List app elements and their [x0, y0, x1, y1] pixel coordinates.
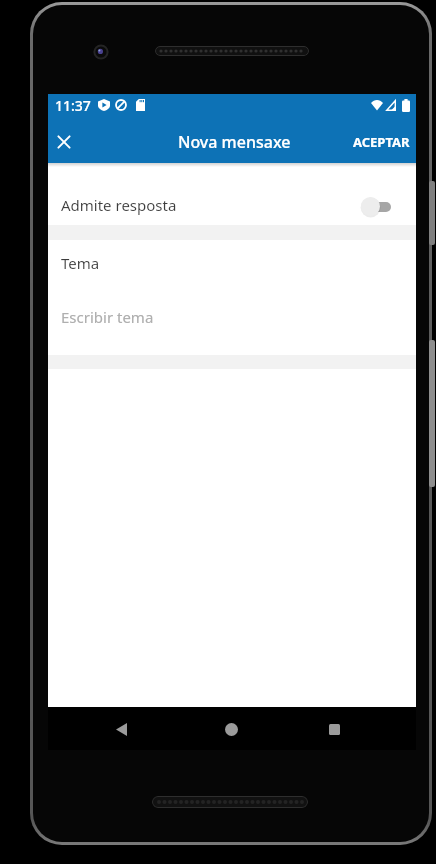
- button[interactable]: [109, 717, 133, 741]
- staticText: 11:37: [55, 96, 91, 115]
- button[interactable]: Admite resposta: [48, 191, 416, 219]
- staticText: Nova mensaxe: [178, 131, 291, 153]
- button[interactable]: [219, 717, 243, 741]
- button[interactable]: [52, 130, 76, 154]
- staticText: Admite resposta: [61, 195, 177, 215]
- button[interactable]: ACEPTAR: [345, 125, 416, 159]
- staticText: ACEPTAR: [353, 133, 410, 151]
- button[interactable]: [361, 197, 391, 217]
- button[interactable]: Escribir tema: [61, 307, 154, 327]
- button[interactable]: [322, 717, 346, 741]
- staticText: Tema: [61, 253, 100, 273]
